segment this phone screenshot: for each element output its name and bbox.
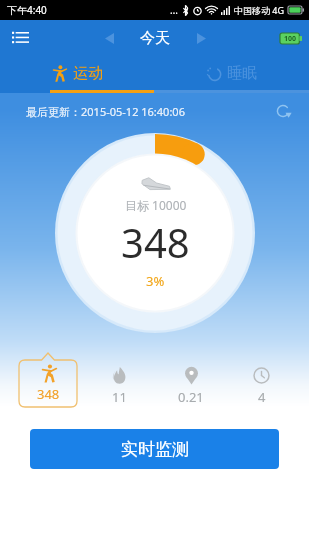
staticText: 睡眠 <box>227 64 257 83</box>
button[interactable]: 今天 <box>140 29 170 48</box>
button[interactable]: 实时监测 <box>30 429 279 469</box>
staticText: 100 <box>284 34 297 44</box>
button[interactable]: Refresh <box>271 99 295 123</box>
button[interactable]: Battery 100 percent <box>280 33 302 44</box>
staticText: 运动 <box>73 64 103 83</box>
staticText: 0.21 <box>178 388 204 406</box>
button[interactable]: Menu <box>6 24 34 52</box>
button[interactable]: 睡眠 <box>154 56 309 90</box>
staticText: 最后更新：2015-05-12 16:40:06 <box>26 104 185 119</box>
button[interactable]: 348 <box>19 353 77 407</box>
button[interactable]: 运动 <box>0 56 154 90</box>
staticText: 348 <box>37 385 60 403</box>
staticText: 348 <box>121 215 190 269</box>
staticText: 目标 10000 <box>125 197 187 213</box>
button[interactable]: Previous day <box>96 25 122 51</box>
staticText: 4 <box>258 388 266 406</box>
button[interactable]: 11 <box>111 366 128 406</box>
button[interactable]: 0.21 <box>178 366 204 406</box>
staticText: … <box>170 3 178 17</box>
staticText: 3% <box>146 272 165 290</box>
button[interactable]: 4 <box>253 366 270 406</box>
staticText: 实时监测 <box>121 439 189 460</box>
staticText: 下午4:40 <box>7 3 47 17</box>
staticText: 中国移动 4G <box>234 4 285 16</box>
staticText: 11 <box>112 388 127 406</box>
button[interactable]: Next day <box>188 25 214 51</box>
